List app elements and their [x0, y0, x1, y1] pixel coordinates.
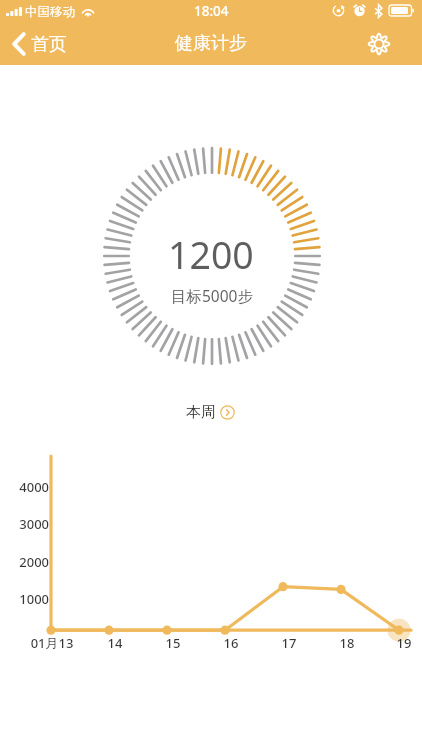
staticText: 3000 — [0, 515, 49, 533]
button[interactable]: Settings — [354, 25, 422, 63]
staticText: 15 — [143, 634, 203, 652]
staticText: 1200 — [168, 229, 254, 280]
staticText: 2000 — [0, 553, 49, 571]
staticText: 14 — [85, 634, 145, 652]
staticText: 首页 — [31, 33, 67, 56]
staticText: 18 — [317, 634, 377, 652]
staticText: 本周 — [186, 403, 216, 422]
staticText: 19 — [374, 634, 422, 652]
staticText: 目标5000步 — [171, 285, 253, 306]
staticText: 4000 — [0, 478, 49, 496]
staticText: 健康计步 — [175, 32, 247, 55]
staticText: 16 — [201, 634, 261, 652]
staticText: 01月13 — [22, 634, 82, 652]
staticText: 18:04 — [194, 2, 229, 20]
staticText: 中国移动 — [25, 4, 75, 20]
staticText: 17 — [259, 634, 319, 652]
button[interactable]: 首页 — [0, 28, 81, 60]
button[interactable]: 本周 — [178, 398, 243, 427]
staticText: 1000 — [0, 590, 49, 608]
